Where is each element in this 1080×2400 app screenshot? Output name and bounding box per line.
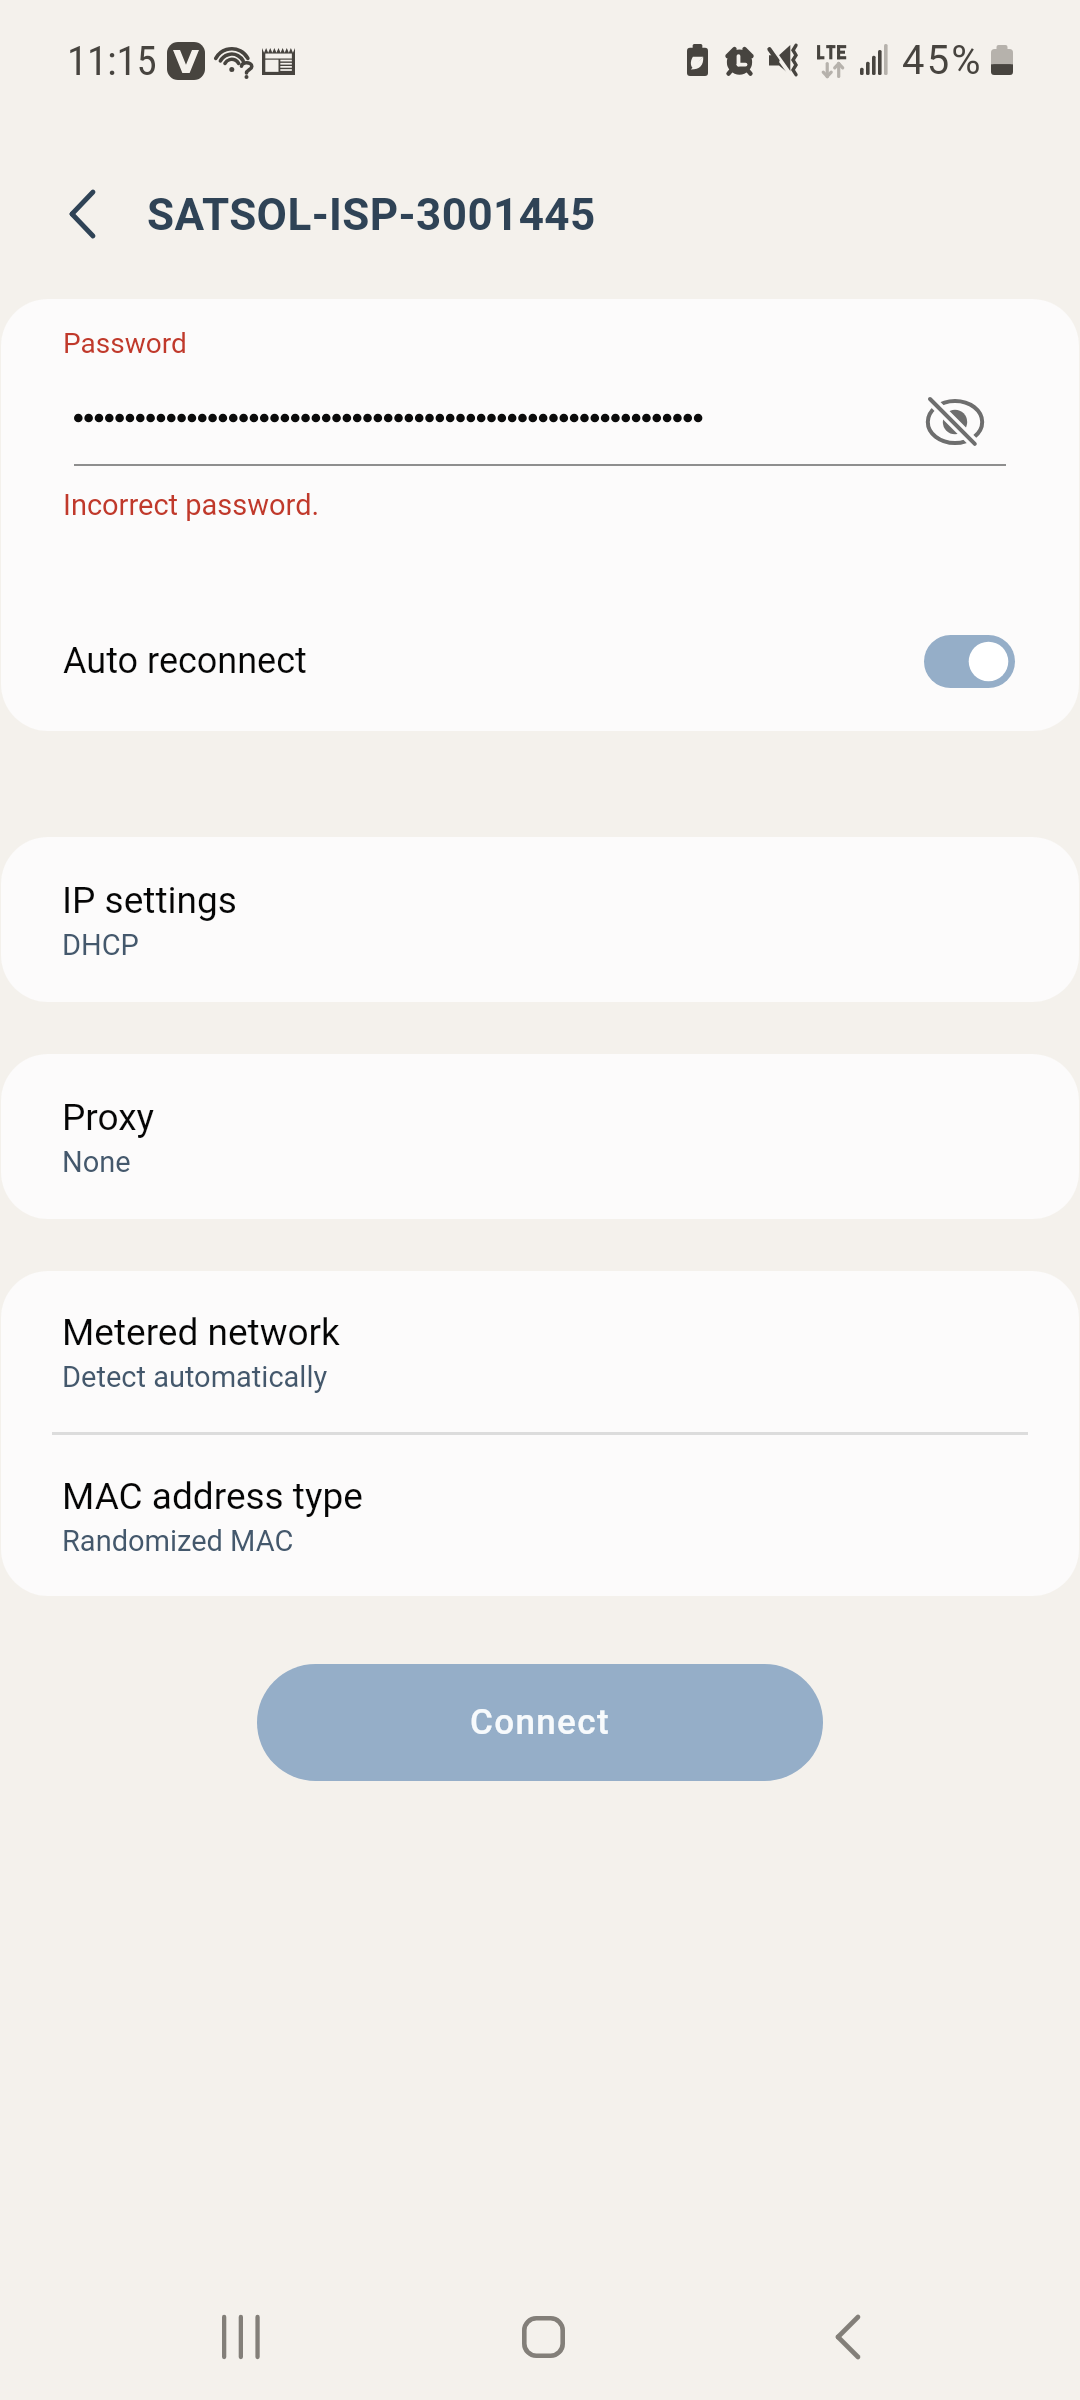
staticText: Connect [470,1702,610,1743]
staticText: 45% [902,37,983,84]
staticText: DHCP [62,928,139,962]
staticText: MAC address type [62,1475,363,1518]
staticText: Proxy [62,1096,155,1139]
staticText: Metered network [62,1311,340,1354]
staticText: Detect automatically [62,1360,328,1394]
staticText: 11:15 [67,37,157,85]
staticText: Password [63,327,187,360]
button[interactable]: Home [483,2287,603,2387]
button[interactable]: Navigate up [22,154,142,274]
button[interactable]: Recent apps [181,2287,301,2387]
button[interactable]: IP settings [1,837,1079,1002]
button[interactable]: Show password [905,390,1005,446]
button[interactable]: MAC address type [1,1435,1079,1596]
button[interactable]: Connect [257,1664,823,1781]
button[interactable]: Metered network [1,1271,1079,1432]
staticText: Auto reconnect [63,640,924,682]
staticText: Randomized MAC [62,1524,294,1558]
button[interactable]: Back [788,2287,908,2387]
staticText: Incorrect password. [63,488,320,522]
staticText: IP settings [62,879,237,922]
staticText: None [62,1145,131,1179]
button[interactable]: Auto reconnect [1,608,1079,714]
button[interactable]: Proxy [1,1054,1079,1219]
staticText: SATSOL-ISP-3001445 [147,189,596,241]
